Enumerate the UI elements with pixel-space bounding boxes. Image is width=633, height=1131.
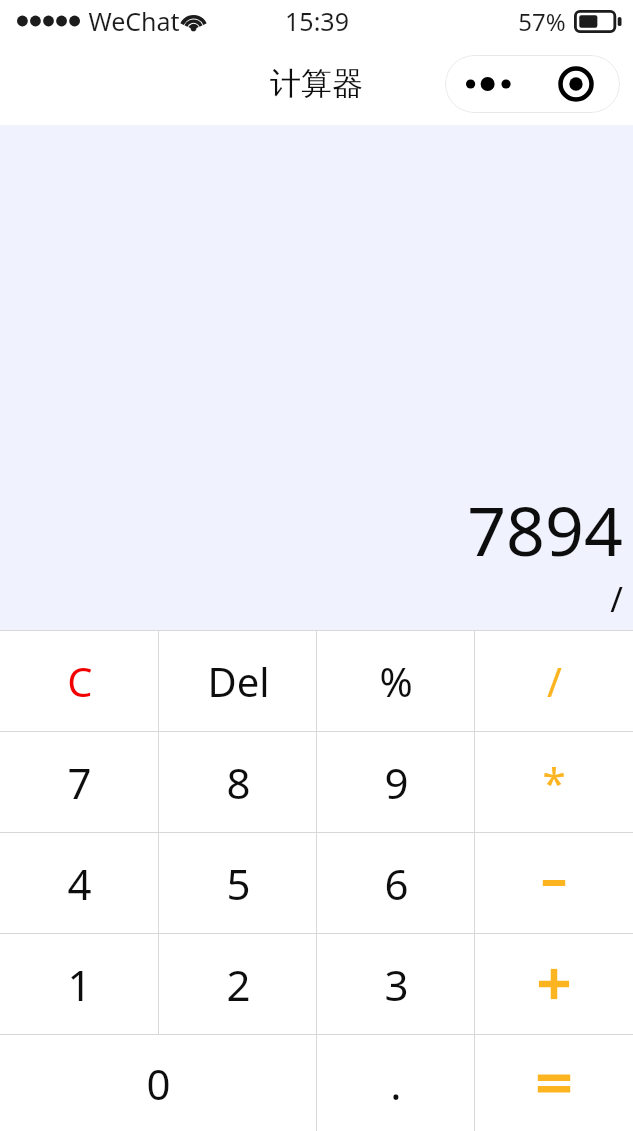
button[interactable]: % — [317, 631, 475, 731]
staticText: 2 — [226, 956, 251, 1013]
staticText: 8 — [226, 754, 251, 811]
staticText: . — [390, 1055, 402, 1112]
button[interactable]: * — [475, 732, 633, 832]
button[interactable]: C — [0, 631, 159, 731]
staticText: 7894 — [467, 483, 623, 576]
staticText: C — [67, 654, 93, 708]
staticText: % — [379, 654, 413, 708]
staticText: 5 — [226, 855, 251, 912]
staticText: 6 — [384, 855, 409, 912]
button[interactable]: 8 — [159, 732, 317, 832]
staticText: 4 — [67, 855, 92, 912]
button[interactable]: Del — [159, 631, 317, 731]
button[interactable]: 7 — [0, 732, 159, 832]
staticText: 3 — [384, 956, 409, 1013]
button[interactable] — [475, 1035, 633, 1131]
button[interactable]: 3 — [317, 934, 475, 1034]
button[interactable] — [475, 934, 633, 1034]
staticText: / — [547, 654, 562, 708]
button[interactable]: 4 — [0, 833, 159, 933]
staticText: 7 — [67, 754, 92, 811]
button[interactable]: . — [317, 1035, 475, 1131]
staticText: 0 — [146, 1055, 171, 1112]
button[interactable]: Close mini program — [532, 55, 620, 113]
button[interactable] — [475, 833, 633, 933]
button[interactable]: 9 — [317, 732, 475, 832]
staticText: WeChat — [88, 4, 180, 38]
staticText: * — [542, 754, 566, 811]
button[interactable]: 5 — [159, 833, 317, 933]
staticText: 计算器 — [270, 64, 363, 103]
staticText: 1 — [67, 956, 92, 1013]
staticText: 57% — [518, 5, 566, 38]
button[interactable]: 1 — [0, 934, 159, 1034]
staticText: Del — [207, 654, 270, 708]
button[interactable]: / — [475, 631, 633, 731]
staticText: 9 — [384, 754, 409, 811]
button[interactable]: 2 — [159, 934, 317, 1034]
staticText: 15:39 — [285, 4, 349, 38]
button[interactable]: More options — [445, 55, 532, 113]
button[interactable]: 6 — [317, 833, 475, 933]
staticText: / — [610, 576, 623, 622]
button[interactable]: 0 — [0, 1035, 317, 1131]
